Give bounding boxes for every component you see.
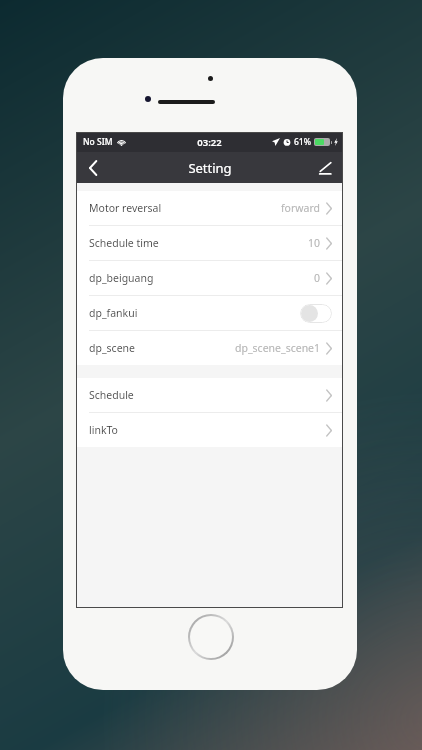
button[interactable]: Edit	[307, 152, 343, 183]
staticText: Setting	[188, 159, 232, 177]
button[interactable]: dp_beiguang	[76, 260, 343, 295]
staticText: 0	[314, 271, 321, 285]
other: dp_fankui toggle	[300, 304, 332, 323]
staticText: linkTo	[89, 423, 118, 437]
button[interactable]: linkTo	[76, 412, 343, 447]
other: Home	[190, 616, 232, 658]
staticText: Motor reversal	[89, 201, 162, 215]
staticText: dp_scene	[89, 341, 135, 355]
staticText: forward	[281, 201, 321, 215]
button[interactable]: dp_fankui	[76, 295, 343, 330]
button[interactable]: Schedule	[76, 378, 343, 412]
staticText: 61%	[294, 136, 311, 148]
staticText: 10	[308, 236, 321, 250]
button[interactable]: Schedule time	[76, 225, 343, 260]
staticText: dp_scene_scene1	[235, 341, 321, 355]
button[interactable]: dp_scene	[76, 330, 343, 365]
staticText: No SIM	[83, 136, 113, 148]
button[interactable]: Back	[76, 152, 110, 183]
staticText: Schedule time	[89, 236, 159, 250]
staticText: dp_beiguang	[89, 271, 154, 285]
staticText: dp_fankui	[89, 306, 138, 320]
staticText: 03:22	[197, 136, 222, 149]
button[interactable]: Motor reversal	[76, 191, 343, 225]
staticText: Schedule	[89, 388, 134, 402]
